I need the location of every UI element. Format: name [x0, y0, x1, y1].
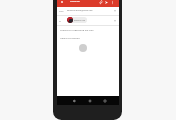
button[interactable]: Close	[58, 0, 65, 5]
staticText: Here's my portion.	[60, 36, 81, 39]
button[interactable]: Attach file	[98, 0, 105, 6]
button[interactable]: More options	[109, 0, 116, 6]
button[interactable]: To	[57, 16, 119, 25]
staticText: anderson.porter@gmail.com	[67, 9, 93, 12]
button[interactable]: Send	[103, 0, 110, 6]
button[interactable]: From	[57, 7, 119, 15]
button[interactable]: Back	[70, 97, 77, 104]
button[interactable]: Home	[86, 97, 93, 104]
button[interactable]: Recent apps	[101, 97, 108, 104]
staticText: Compose	[70, 0, 80, 3]
staticText: Thanks for organizing the trip!	[60, 28, 94, 31]
button[interactable]: Rebecca Lee	[67, 17, 87, 23]
staticText: Rebecca Lee	[74, 19, 85, 22]
staticText: From	[59, 10, 64, 12]
staticText: To	[59, 20, 61, 22]
